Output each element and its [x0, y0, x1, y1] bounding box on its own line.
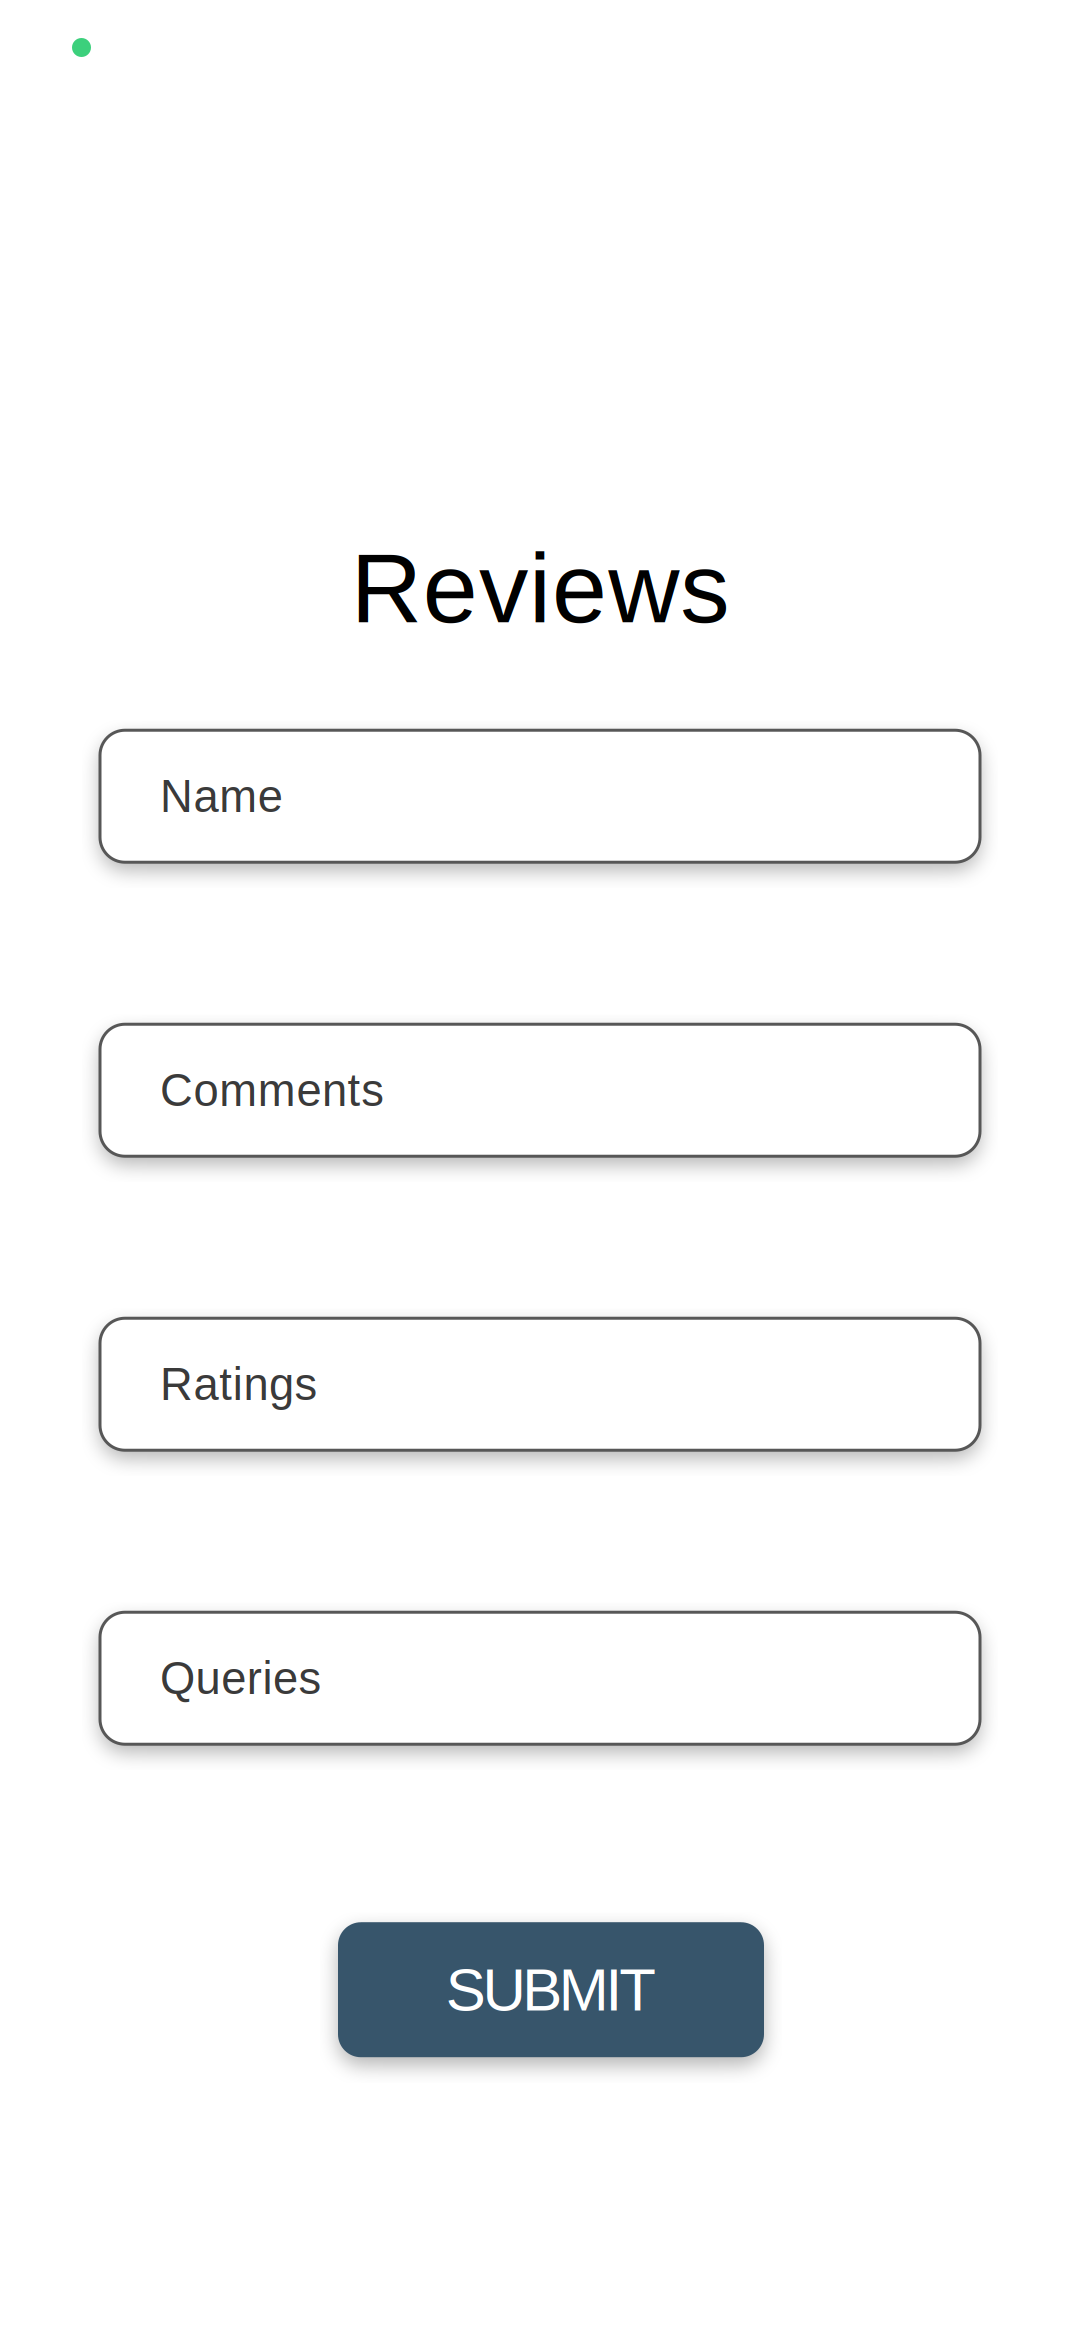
button[interactable]: Name [100, 730, 980, 862]
button[interactable]: SUBMIT [338, 1922, 764, 2057]
staticText: Comments [160, 1065, 384, 1115]
staticText: SUBMIT [446, 1956, 656, 2023]
button[interactable]: Comments [100, 1024, 980, 1156]
staticText: Reviews [351, 533, 729, 643]
staticText: Queries [160, 1653, 322, 1703]
button[interactable]: Queries [100, 1612, 980, 1744]
button[interactable]: Ratings [100, 1318, 980, 1450]
staticText: Name [160, 771, 283, 821]
staticText: Ratings [160, 1359, 318, 1409]
